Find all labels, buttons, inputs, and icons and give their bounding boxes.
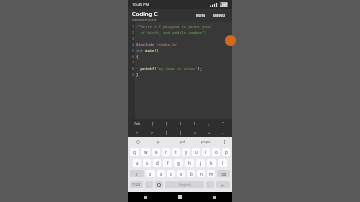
staticText: > xyxy=(151,130,154,135)
button[interactable]: } xyxy=(160,119,174,128)
button[interactable]: Run code xyxy=(225,35,236,46)
staticText: printf("my name is ashar"); xyxy=(136,66,203,71)
button[interactable]: Backspace xyxy=(217,170,230,177)
staticText: 4 xyxy=(132,42,135,47)
staticText: f xyxy=(167,160,169,166)
staticText: p xyxy=(157,139,160,144)
button[interactable]: ( xyxy=(174,119,188,128)
button[interactable]: c xyxy=(167,170,175,177)
staticText: w xyxy=(144,149,148,155)
button[interactable]: h xyxy=(185,159,194,167)
button[interactable]: f xyxy=(163,159,172,167)
button[interactable]: < xyxy=(130,128,145,137)
button[interactable]: Enter xyxy=(216,181,230,188)
button[interactable]: Symbols xyxy=(130,181,143,188)
button[interactable]: ] xyxy=(174,128,188,137)
button[interactable]: More suggestions xyxy=(218,137,230,146)
staticText: English xyxy=(179,182,191,187)
button[interactable]: d xyxy=(153,159,161,167)
button[interactable]: i xyxy=(202,148,210,156)
button[interactable]: v xyxy=(177,170,185,177)
staticText: o xyxy=(215,149,218,155)
staticText: = xyxy=(194,130,197,135)
button[interactable]: Comma xyxy=(145,181,153,188)
staticText: int main() xyxy=(136,48,159,53)
button[interactable]: Period xyxy=(206,181,214,188)
staticText: t xyxy=(175,149,177,155)
button[interactable]: { xyxy=(145,119,160,128)
button[interactable]: x xyxy=(157,170,165,177)
button[interactable]: > xyxy=(145,128,160,137)
button[interactable]: l xyxy=(218,159,227,167)
staticText: l xyxy=(222,160,224,166)
button[interactable]: u xyxy=(192,148,200,156)
button[interactable]: k xyxy=(207,159,216,167)
staticText: h xyxy=(188,160,191,166)
button[interactable]: Tab xyxy=(130,119,145,128)
button[interactable]: a xyxy=(133,159,141,167)
button[interactable]: ; xyxy=(202,119,216,128)
button[interactable]: + xyxy=(202,128,216,137)
staticText: ⌫ xyxy=(221,172,227,176)
button[interactable]: ) xyxy=(188,119,202,128)
button[interactable]: Recents xyxy=(197,192,232,202)
staticText: " xyxy=(222,121,224,126)
button[interactable]: g xyxy=(174,159,183,167)
button[interactable]: Home xyxy=(162,192,197,202)
button[interactable]: pd xyxy=(170,137,194,146)
button[interactable]: Space xyxy=(165,181,204,188)
staticText: 5 xyxy=(132,48,135,53)
staticText: x xyxy=(160,171,163,177)
button[interactable]: p xyxy=(146,137,170,146)
button[interactable]: y xyxy=(182,148,190,156)
staticText: /*Write a C program to print your name,d… xyxy=(136,24,232,29)
button[interactable]: z xyxy=(146,170,155,177)
button[interactable]: m xyxy=(207,170,215,177)
button[interactable]: e xyxy=(152,148,160,156)
staticText: + xyxy=(208,130,211,135)
staticText: pd xyxy=(180,139,185,144)
staticText: s xyxy=(146,160,149,166)
button[interactable]: [ xyxy=(160,128,174,137)
button[interactable]: = xyxy=(188,128,202,137)
button[interactable]: q xyxy=(130,148,139,156)
staticText: } xyxy=(166,121,168,126)
button[interactable]: pepe xyxy=(194,137,218,146)
staticText: { xyxy=(152,121,154,126)
button[interactable]: p xyxy=(222,148,230,156)
staticText: { xyxy=(136,54,139,59)
staticText: ↵ xyxy=(221,183,225,187)
button[interactable]: w xyxy=(141,148,150,156)
button[interactable]: t xyxy=(172,148,180,156)
button[interactable]: j xyxy=(196,159,205,167)
button[interactable]: Shift xyxy=(130,170,144,177)
staticText: Tab xyxy=(134,121,141,126)
staticText: ] xyxy=(180,130,182,135)
button[interactable]: n xyxy=(197,170,205,177)
button[interactable]: " xyxy=(216,119,230,128)
button[interactable]: Voice input xyxy=(130,137,146,146)
staticText: #include <stdio.h> xyxy=(136,42,178,47)
staticText: k xyxy=(210,160,213,166)
staticText: ⇧ xyxy=(135,172,139,176)
button[interactable]: b xyxy=(187,170,195,177)
button[interactable]: r xyxy=(162,148,170,156)
button[interactable]: RUN xyxy=(194,12,207,19)
staticText: 7 xyxy=(132,60,135,65)
button[interactable]: - xyxy=(216,128,230,137)
staticText: ; xyxy=(208,121,210,126)
staticText: pepe xyxy=(201,139,211,144)
staticText: } xyxy=(136,72,139,77)
staticText: b xyxy=(190,171,193,177)
button[interactable]: Emoji xyxy=(155,181,163,188)
staticText: ( xyxy=(180,121,182,126)
button[interactable]: Back xyxy=(128,192,162,202)
staticText: 9 xyxy=(132,72,135,77)
staticText: p xyxy=(225,149,228,155)
staticText: , xyxy=(148,182,150,187)
button[interactable]: o xyxy=(212,148,220,156)
button[interactable]: MENU xyxy=(211,12,228,19)
button[interactable]: s xyxy=(143,159,151,167)
staticText: g xyxy=(177,160,180,166)
staticText: 2 xyxy=(132,30,135,35)
